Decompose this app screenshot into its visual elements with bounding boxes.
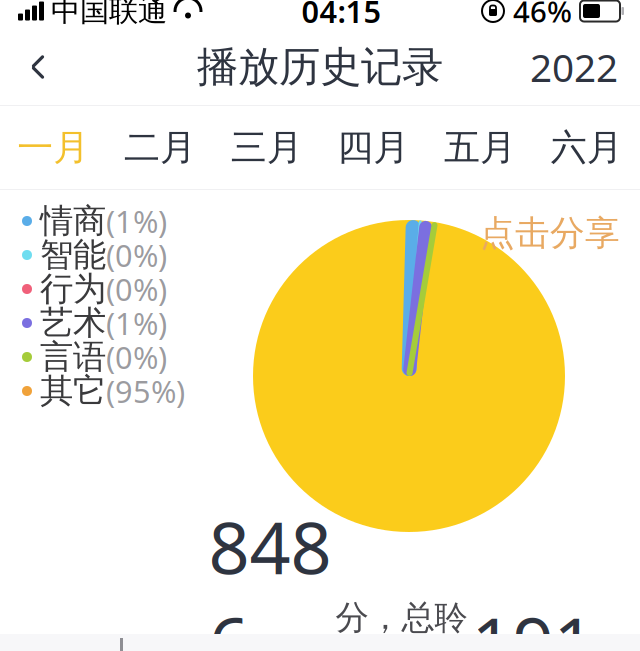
staticText: (0%) — [106, 269, 167, 309]
button[interactable]: 返回 — [8, 32, 68, 102]
staticText: 艺术 — [40, 302, 106, 343]
staticText: 智能 — [40, 234, 106, 275]
staticText: 一月 — [17, 125, 89, 170]
staticText: 8486 — [208, 498, 331, 651]
staticText: (95%) — [106, 371, 185, 411]
staticText: 言语 — [40, 336, 106, 377]
button[interactable]: 2022 — [516, 32, 632, 102]
button[interactable]: 四月 — [320, 106, 427, 189]
staticText: 情商 — [40, 200, 106, 241]
staticText: 46% — [513, 0, 572, 30]
staticText: 中国联通 — [51, 0, 167, 29]
staticText: 四月 — [337, 125, 409, 170]
staticText: (0%) — [106, 337, 167, 377]
staticText: 行为 — [40, 268, 106, 309]
staticText: 2022 — [530, 41, 618, 93]
staticText: 191 — [471, 594, 594, 651]
staticText: 04:15 — [301, 0, 381, 31]
staticText: 点击分享 — [480, 212, 620, 255]
staticText: 五月 — [444, 125, 516, 170]
staticText: 其它 — [40, 370, 106, 411]
staticText: 1月份总计得 — [20, 635, 204, 651]
button[interactable]: 三月 — [213, 106, 320, 189]
staticText: (0%) — [106, 235, 167, 275]
staticText: 二月 — [124, 125, 196, 170]
staticText: (1%) — [106, 303, 167, 343]
button[interactable]: 点击分享 — [472, 208, 628, 259]
button[interactable]: 一月 — [0, 106, 107, 189]
staticText: (1%) — [106, 201, 167, 241]
staticText: 三月 — [231, 125, 303, 170]
staticText: 分，总聆听 — [335, 597, 467, 651]
button[interactable]: 二月 — [107, 106, 213, 189]
staticText: 播放历史记录 — [197, 42, 443, 92]
staticText: 六月 — [551, 125, 623, 170]
button[interactable]: 六月 — [533, 106, 640, 189]
button[interactable]: 五月 — [427, 106, 533, 189]
